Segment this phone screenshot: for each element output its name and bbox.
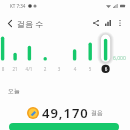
staticText: 6 <box>98 66 114 72</box>
staticText: 2 <box>37 66 53 72</box>
staticText: 4/1 <box>21 66 37 72</box>
button[interactable]: Back <box>3 17 16 30</box>
button[interactable]: Trends <box>102 17 114 29</box>
staticText: KT 7:34 <box>10 3 26 9</box>
button[interactable]: More options <box>114 17 126 29</box>
staticText: 4 <box>67 66 83 72</box>
button[interactable]: Share <box>90 17 102 29</box>
staticText: 걸음 <box>91 109 103 117</box>
staticText: 8 <box>0 66 11 72</box>
staticText: 오늘 <box>8 87 20 95</box>
staticText: 3 <box>51 66 67 72</box>
staticText: 49,170 <box>42 104 89 122</box>
staticText: 5 <box>82 66 98 72</box>
staticText: 6,000 <box>113 55 126 62</box>
staticText: 21 <box>7 66 23 72</box>
staticText: 걸음 수 <box>17 18 44 29</box>
